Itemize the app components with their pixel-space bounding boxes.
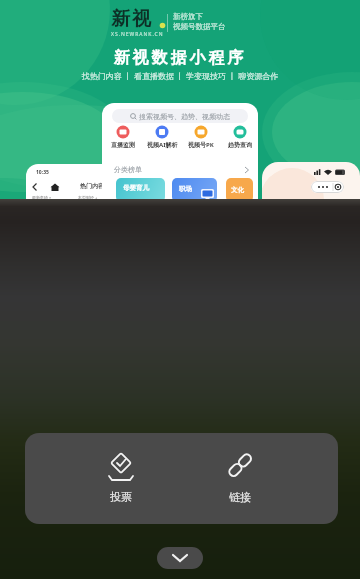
staticText: 投票 — [110, 490, 132, 504]
button[interactable]: 链接 — [200, 448, 280, 520]
staticText: 找热门内容 丨 看直播数据 丨 学变现技巧 丨 聊资源合作 — [0, 70, 360, 81]
button[interactable]: 视频号PK — [182, 125, 220, 153]
button[interactable]: 视频AI解析 — [143, 125, 181, 153]
staticText: 新榜旗下 — [173, 12, 203, 21]
staticText: 文化 — [231, 186, 244, 194]
staticText: 视频号PK — [188, 141, 214, 149]
button[interactable]: 趋势查询 — [221, 125, 258, 153]
button[interactable] — [157, 547, 203, 569]
staticText: 趋势查询 — [228, 141, 252, 149]
staticText: 职场 — [179, 185, 192, 193]
button[interactable]: 文化 — [226, 178, 253, 202]
button[interactable]: 直播监测 — [104, 125, 142, 153]
staticText: 新视数据小程序 — [0, 48, 360, 68]
button[interactable]: 搜索视频号、趋势、视频动态 — [112, 109, 248, 123]
staticText: 视频AI解析 — [147, 141, 178, 149]
staticText: 视频号数据平台 — [173, 22, 226, 31]
button[interactable]: 母婴育儿 — [116, 178, 165, 202]
staticText: 母婴育儿 — [123, 184, 149, 192]
staticText: 分类榜单 — [114, 165, 142, 174]
staticText: 本页财经 + — [78, 195, 98, 200]
staticText: 搜索视频号、趋势、视频动态 — [139, 112, 230, 121]
staticText: 热门内容 — [80, 182, 104, 190]
staticText: 链接 — [229, 490, 251, 504]
button[interactable]: 投票 — [81, 448, 161, 520]
staticText: 10:35 — [36, 169, 49, 176]
staticText: XS.NEWRANK.CN — [111, 31, 164, 38]
button[interactable]: 职场 — [172, 178, 217, 202]
staticText: 直播监测 — [111, 141, 135, 149]
staticText: 新视 — [110, 7, 152, 31]
staticText: 最新李琦 × — [32, 195, 52, 200]
